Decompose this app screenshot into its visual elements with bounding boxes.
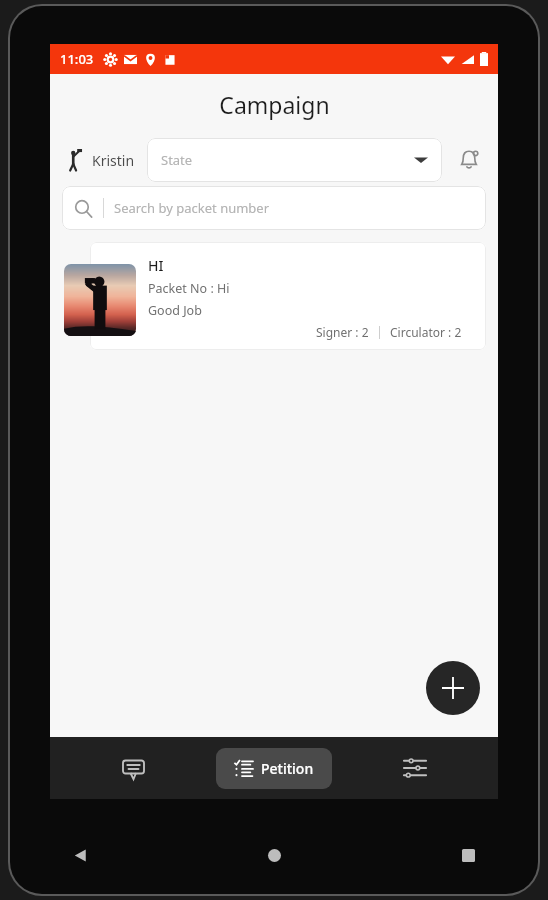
button[interactable]: Back: [62, 837, 98, 873]
button[interactable]: Kristin: [62, 149, 137, 171]
button[interactable]: HI: [90, 242, 486, 350]
button[interactable]: Notifications: [452, 143, 486, 177]
staticText: Packet No : Hi: [148, 280, 230, 297]
button[interactable]: State: [147, 138, 442, 182]
button[interactable]: Add: [426, 661, 480, 715]
button[interactable]: Petition: [216, 748, 332, 789]
button[interactable]: Messages: [106, 741, 160, 795]
button[interactable]: Settings: [388, 741, 442, 795]
button[interactable]: Home: [256, 837, 292, 873]
staticText: Signer : 2: [316, 324, 369, 340]
staticText: Kristin: [92, 151, 135, 170]
staticText: Petition: [261, 759, 314, 778]
staticText: Campaign: [219, 89, 330, 120]
staticText: 11:03: [60, 50, 94, 68]
staticText: Good Job: [148, 302, 202, 319]
staticText: HI: [148, 256, 164, 275]
staticText: Search by packet number: [114, 199, 270, 217]
button[interactable]: Recents: [450, 837, 486, 873]
staticText: Circulator : 2: [390, 324, 462, 340]
staticText: State: [161, 151, 193, 169]
button[interactable]: Search by packet number: [62, 186, 486, 230]
